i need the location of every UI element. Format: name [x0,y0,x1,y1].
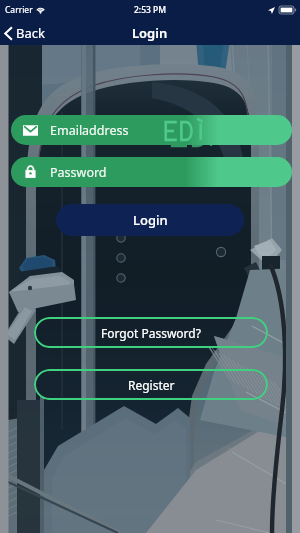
staticText: Forgot Password? [101,325,201,341]
button[interactable]: Password [11,157,292,187]
staticText: Password [50,164,107,181]
staticText: Back [16,24,45,42]
staticText: Login [133,211,168,229]
button[interactable]: Back [4,24,45,42]
button[interactable]: Register [34,369,268,400]
staticText: Carrier [5,4,33,16]
staticText: Register [128,377,175,393]
button[interactable]: Forgot Password? [34,317,268,348]
staticText: Emailaddress [50,122,129,139]
staticText: 2:53 PM [134,4,167,16]
button[interactable]: Login [56,204,244,236]
button[interactable]: Emailaddress [11,115,292,145]
staticText: Login [132,24,168,42]
